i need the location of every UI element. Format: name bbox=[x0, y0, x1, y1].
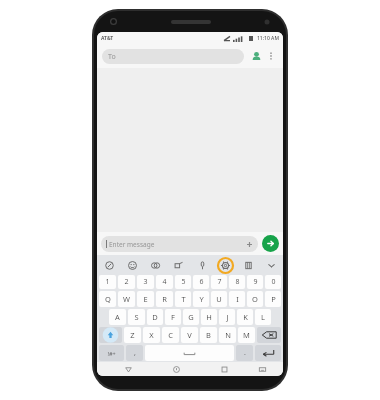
staticText: , bbox=[134, 348, 136, 358]
staticText: 11:10 AM bbox=[257, 35, 279, 42]
button[interactable]: E bbox=[137, 291, 154, 307]
staticText: U bbox=[216, 294, 222, 304]
staticText: K bbox=[243, 312, 248, 322]
button[interactable]: Shift bbox=[99, 327, 122, 343]
button[interactable]: 7 bbox=[211, 275, 227, 289]
button[interactable]: More options bbox=[264, 49, 278, 63]
button[interactable]: Q bbox=[99, 291, 116, 307]
staticText: 3 bbox=[143, 277, 148, 287]
button[interactable]: S bbox=[128, 309, 145, 325]
button[interactable]: 4 bbox=[156, 275, 173, 289]
staticText: L bbox=[261, 312, 265, 322]
staticText: 6 bbox=[199, 277, 204, 287]
staticText: 4 bbox=[162, 277, 167, 287]
staticText: 5 bbox=[181, 277, 186, 287]
button[interactable]: F bbox=[165, 309, 181, 325]
staticText: Z bbox=[130, 330, 135, 340]
button[interactable]: I bbox=[229, 291, 245, 307]
button[interactable]: , bbox=[126, 345, 143, 361]
staticText: E bbox=[143, 294, 148, 304]
button[interactable]: J bbox=[219, 309, 235, 325]
button[interactable]: Z bbox=[124, 327, 141, 343]
button[interactable]: W bbox=[118, 291, 135, 307]
button[interactable]: Stickers bbox=[146, 256, 164, 274]
button[interactable]: To bbox=[102, 49, 244, 64]
staticText: 2 bbox=[124, 277, 129, 287]
button[interactable]: A bbox=[109, 309, 126, 325]
button[interactable]: 9 bbox=[247, 275, 263, 289]
button[interactable]: 5 bbox=[175, 275, 191, 289]
staticText: R bbox=[162, 294, 167, 304]
staticText: T bbox=[181, 294, 186, 304]
button[interactable]: U bbox=[211, 291, 227, 307]
button[interactable]: K bbox=[237, 309, 253, 325]
button[interactable]: B bbox=[200, 327, 217, 343]
staticText: A bbox=[115, 312, 120, 322]
button[interactable]: Send bbox=[262, 235, 279, 252]
staticText: M bbox=[243, 330, 250, 340]
staticText: Enter message bbox=[109, 240, 155, 249]
button[interactable]: O bbox=[247, 291, 263, 307]
button[interactable]: Emoji bbox=[123, 256, 141, 274]
staticText: . bbox=[244, 348, 246, 358]
staticText: W bbox=[123, 294, 130, 304]
button[interactable]: GIF bbox=[169, 256, 187, 274]
button[interactable]: P bbox=[265, 291, 281, 307]
button[interactable]: G bbox=[183, 309, 199, 325]
button[interactable]: Backspace bbox=[257, 327, 281, 343]
button[interactable]: Expand bbox=[262, 256, 280, 274]
staticText: To bbox=[108, 52, 116, 62]
button[interactable]: L bbox=[255, 309, 271, 325]
button[interactable]: M bbox=[238, 327, 255, 343]
button[interactable]: T bbox=[175, 291, 191, 307]
button[interactable]: Recents bbox=[218, 363, 231, 376]
staticText: B bbox=[206, 330, 211, 340]
button[interactable]: C bbox=[162, 327, 179, 343]
staticText: 0 bbox=[271, 277, 276, 287]
button[interactable]: Clipboard bbox=[239, 256, 257, 274]
button[interactable]: !#+ bbox=[99, 345, 124, 361]
staticText: I bbox=[236, 294, 239, 304]
button[interactable]: 0 bbox=[265, 275, 281, 289]
button[interactable]: X bbox=[143, 327, 160, 343]
staticText: V bbox=[187, 330, 192, 340]
staticText: C bbox=[168, 330, 173, 340]
button[interactable]: Space bbox=[145, 345, 234, 361]
button[interactable]: 1 bbox=[99, 275, 116, 289]
button[interactable]: 8 bbox=[229, 275, 245, 289]
button[interactable]: Y bbox=[193, 291, 209, 307]
button[interactable]: Add contact bbox=[248, 48, 264, 64]
button[interactable]: R bbox=[156, 291, 173, 307]
staticText: AT&T bbox=[101, 35, 114, 42]
button[interactable]: Handwriting bbox=[100, 256, 118, 274]
button[interactable]: 6 bbox=[193, 275, 209, 289]
button[interactable]: N bbox=[219, 327, 236, 343]
staticText: 7 bbox=[217, 277, 222, 287]
button[interactable]: Keyboard settings bbox=[216, 256, 234, 274]
staticText: D bbox=[152, 312, 158, 322]
staticText: Q bbox=[105, 294, 111, 304]
staticText: !#+ bbox=[107, 350, 116, 357]
button[interactable]: Voice input bbox=[193, 256, 211, 274]
button[interactable]: . bbox=[236, 345, 253, 361]
staticText: X bbox=[149, 330, 154, 340]
staticText: O bbox=[252, 294, 258, 304]
button[interactable]: Enter bbox=[255, 345, 281, 361]
staticText: 8 bbox=[235, 277, 240, 287]
staticText: J bbox=[226, 312, 229, 322]
button[interactable]: 2 bbox=[118, 275, 135, 289]
staticText: N bbox=[225, 330, 231, 340]
staticText: H bbox=[206, 312, 212, 322]
button[interactable]: Home bbox=[170, 363, 183, 376]
staticText: Y bbox=[199, 294, 204, 304]
button[interactable]: Enter message bbox=[101, 236, 258, 252]
button[interactable]: Keyboard bbox=[256, 363, 269, 376]
button[interactable]: Back bbox=[122, 363, 135, 376]
button[interactable]: V bbox=[181, 327, 198, 343]
staticText: 1 bbox=[105, 277, 110, 287]
button[interactable]: H bbox=[201, 309, 217, 325]
button[interactable]: 3 bbox=[137, 275, 154, 289]
button[interactable]: D bbox=[147, 309, 163, 325]
staticText: S bbox=[134, 312, 139, 322]
staticText: 9 bbox=[253, 277, 258, 287]
